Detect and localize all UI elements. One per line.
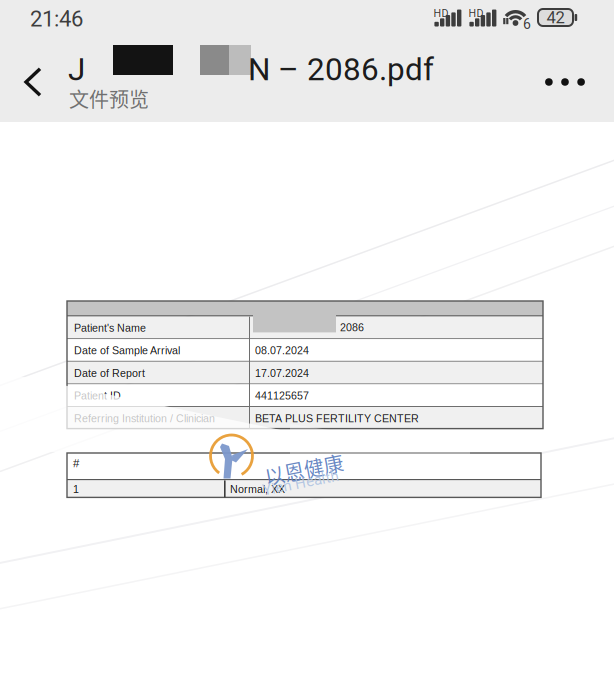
staticText: 文件预览 [69,84,149,113]
staticText: 6 [523,16,531,32]
staticText: 1 [73,483,79,495]
staticText: Patient ID [74,390,121,402]
staticText: HD [433,7,448,19]
staticText: Patient's Name [74,322,146,334]
staticText: N – 2086.pdf [248,51,434,88]
staticText: Date of Report [74,367,145,379]
staticText: 42 [546,8,564,27]
staticText: 以恩健康 [264,455,344,484]
staticText: # [73,457,79,470]
staticText: J [68,51,85,88]
staticText: 21:46 [30,6,83,32]
staticText: Date of Sample Arrival [74,345,180,357]
staticText: HD [468,7,483,19]
staticText: Yien Health [262,474,339,492]
staticText: 17.07.2024 [255,367,309,379]
staticText: 2086 [340,321,364,333]
staticText: BETA PLUS FERTILITY CENTER [255,412,419,424]
staticText: 441125657 [255,390,309,402]
staticText: Referring Institution / Clinician [74,412,215,424]
staticText: Normal, XX [230,483,285,495]
button[interactable]: Back [7,54,59,110]
button[interactable]: More options [534,54,596,110]
staticText: 08.07.2024 [255,345,309,357]
